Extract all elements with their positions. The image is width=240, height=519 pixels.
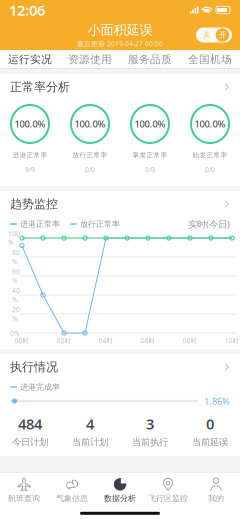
staticText: 100.0% — [14, 118, 45, 130]
button[interactable]: 气象信息 — [48, 473, 96, 508]
staticText: 飞行区监控 — [148, 493, 188, 503]
staticText: 100% — [8, 229, 20, 247]
staticText: 当前执行 — [132, 436, 168, 448]
staticText: 3 — [146, 414, 154, 433]
staticText: 20% — [12, 305, 20, 323]
staticText: 484 — [18, 414, 42, 433]
staticText: 9/9 — [25, 165, 35, 174]
staticText: 小面积延误 — [87, 22, 152, 38]
staticText: 0% — [10, 329, 20, 337]
button[interactable]: 运行模式开关 — [196, 25, 232, 45]
staticText: 0 — [206, 414, 214, 433]
button[interactable]: 数据分析 — [96, 473, 144, 508]
staticText: 4 — [86, 414, 94, 433]
staticText: 0/0 — [145, 165, 155, 174]
button[interactable]: 资源使用 — [60, 50, 120, 69]
staticText: 关 — [202, 30, 210, 40]
staticText: 100.0% — [194, 118, 225, 130]
button[interactable]: 我的 — [192, 473, 240, 508]
staticText: 执行情况 — [10, 360, 58, 374]
staticText: 放行正常率 — [72, 151, 107, 159]
button[interactable]: 飞行区监控 — [144, 473, 192, 508]
button[interactable]: 全国机场 — [180, 50, 240, 69]
staticText: 放行正常率 — [80, 219, 120, 229]
staticText: 最后更新 2019-04-27 00:06 — [77, 39, 163, 48]
staticText: 40% — [12, 286, 20, 304]
staticText: 02时 — [56, 336, 71, 345]
staticText: 正常率分析 — [10, 80, 70, 94]
staticText: 当前延误 — [192, 436, 228, 448]
staticText: 服务品质 — [128, 53, 172, 66]
button[interactable]: 服务品质 — [120, 50, 180, 69]
staticText: 0/0 — [205, 165, 215, 174]
staticText: 进港正常率 — [20, 219, 60, 229]
staticText: 04时 — [98, 336, 113, 345]
staticText: 资源使用 — [68, 53, 112, 66]
staticText: 06时 — [140, 336, 155, 345]
button[interactable]: 运行实况 — [0, 50, 60, 69]
button[interactable]: 执行情况 — [0, 354, 240, 380]
staticText: 今日计划 — [12, 436, 48, 448]
staticText: 100.0% — [134, 118, 165, 130]
staticText: 开 — [218, 30, 226, 40]
staticText: 航班查询 — [8, 493, 40, 503]
staticText: 始发正常率 — [192, 151, 227, 159]
staticText: 掌发正常率 — [132, 151, 167, 159]
staticText: 60% — [12, 267, 20, 285]
staticText: 全国机场 — [188, 53, 232, 66]
staticText: 数据分析 — [104, 493, 136, 503]
staticText: 进港正常率 — [12, 151, 47, 159]
staticText: 08时 — [182, 336, 197, 345]
staticText: 0/0 — [85, 165, 95, 174]
staticText: 进港完成率 — [20, 382, 60, 392]
staticText: 80% — [12, 248, 20, 266]
button[interactable]: 航班查询 — [0, 473, 48, 508]
button[interactable]: 正常率分析 — [0, 74, 240, 100]
staticText: 趋势监控 — [10, 197, 58, 211]
staticText: 实时(今日) — [188, 218, 230, 230]
staticText: 00时 — [14, 336, 29, 345]
staticText: 10时 — [224, 336, 239, 345]
button[interactable]: 趋势监控 — [0, 191, 240, 217]
staticText: 我的 — [208, 493, 224, 503]
staticText: 气象信息 — [56, 493, 88, 503]
staticText: 运行实况 — [8, 53, 52, 66]
staticText: 1.86% — [204, 395, 230, 407]
staticText: 12:06 — [9, 0, 45, 20]
staticText: 当前计划 — [72, 436, 108, 448]
staticText: 100.0% — [74, 118, 105, 130]
